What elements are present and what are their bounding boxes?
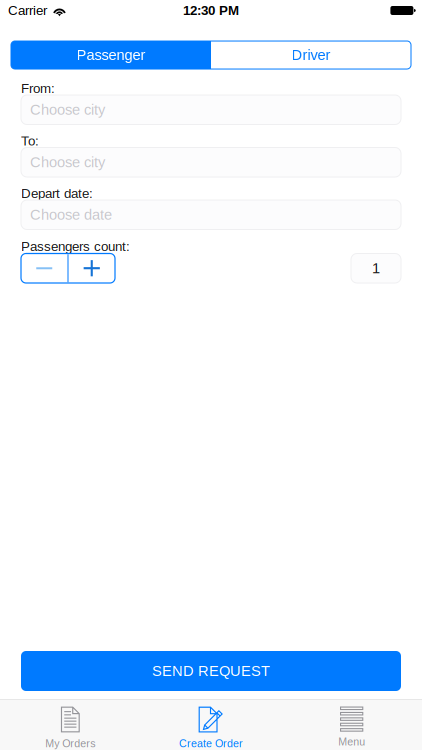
staticText: Driver — [291, 47, 330, 63]
button[interactable]: Choose city — [21, 95, 401, 124]
staticText: My Orders — [45, 737, 95, 749]
staticText: Passenger — [76, 47, 145, 63]
staticText: Create Order — [179, 737, 243, 749]
button[interactable]: Passenger — [11, 41, 211, 69]
staticText: 12:30 PM — [183, 3, 239, 18]
button[interactable]: Menu — [281, 699, 422, 750]
button[interactable]: Increase passengers — [68, 254, 115, 282]
button[interactable]: Create Order — [141, 699, 281, 750]
staticText: Passengers count: — [21, 239, 130, 254]
staticText: Choose city — [30, 102, 105, 118]
button[interactable]: Driver — [211, 41, 411, 69]
button[interactable]: Decrease passengers — [21, 254, 67, 282]
staticText: Depart date: — [21, 186, 93, 201]
staticText: From: — [21, 81, 55, 96]
staticText: Menu — [338, 736, 365, 748]
staticText: To: — [21, 134, 39, 148]
button[interactable]: My Orders — [0, 699, 141, 750]
button[interactable]: Choose date — [21, 200, 401, 229]
staticText: 1 — [372, 260, 380, 276]
button[interactable]: SEND REQUEST — [21, 651, 401, 691]
staticText: Choose city — [30, 154, 105, 170]
staticText: Carrier — [8, 3, 47, 18]
button[interactable]: Choose city — [21, 147, 401, 177]
staticText: SEND REQUEST — [152, 663, 270, 679]
staticText: Choose date — [30, 207, 112, 223]
